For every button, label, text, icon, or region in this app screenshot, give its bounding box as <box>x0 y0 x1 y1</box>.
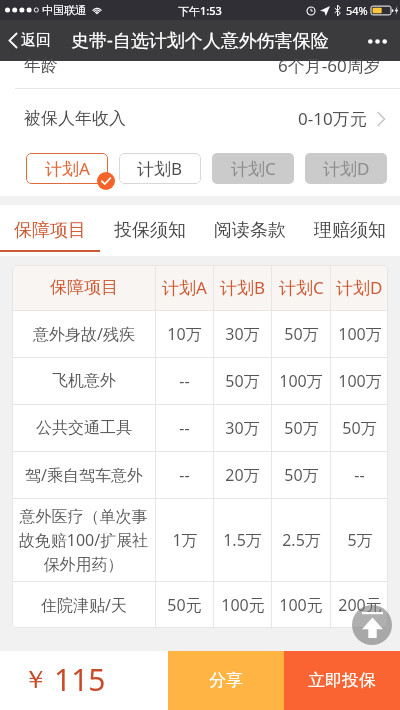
staticText: 50万 <box>284 323 319 345</box>
staticText: 54% <box>346 3 368 18</box>
staticText: 计划D <box>323 157 370 180</box>
button[interactable]: Back to top <box>352 605 392 645</box>
staticText: 投保须知 <box>114 219 186 242</box>
button[interactable]: 立即投保 <box>284 651 400 710</box>
staticText: 50元 <box>167 594 202 616</box>
staticText: 计划C <box>279 276 324 299</box>
staticText: 100元 <box>279 594 323 616</box>
staticText: 20万 <box>225 464 260 486</box>
staticText: 50万 <box>284 464 319 486</box>
staticText: ￥ <box>23 664 48 695</box>
staticText: 计划B <box>137 157 183 180</box>
staticText: 30万 <box>225 417 260 439</box>
staticText: 驾/乘自驾车意外 <box>25 464 143 486</box>
staticText: 100万 <box>279 370 323 392</box>
button[interactable]: 返回 <box>0 31 57 50</box>
staticText: 被保人年收入 <box>24 108 126 129</box>
staticText: 计划D <box>336 276 383 299</box>
staticText: 50万 <box>284 417 319 439</box>
staticText: 下午1:53 <box>178 3 222 18</box>
staticText: 返回 <box>21 31 51 50</box>
button[interactable]: 阅读条款 <box>200 205 300 256</box>
staticText: 保障项目 <box>50 277 118 298</box>
staticText: 5万 <box>347 529 373 551</box>
staticText: 理赔须知 <box>314 219 386 242</box>
staticText: 0-10万元 <box>298 107 367 130</box>
staticText: 阅读条款 <box>214 219 286 242</box>
button[interactable]: 计划D <box>305 153 387 184</box>
staticText: 飞机意外 <box>52 371 116 391</box>
staticText: 50万 <box>225 370 260 392</box>
staticText: 200元 <box>338 594 382 616</box>
button[interactable]: 计划B <box>119 153 201 184</box>
staticText: 史带-自选计划个人意外伤害保险 <box>71 28 329 53</box>
button[interactable]: 分享 <box>168 651 284 710</box>
staticText: 100万 <box>338 370 382 392</box>
staticText: 公共交通工具 <box>36 418 132 438</box>
staticText: 1万 <box>172 529 198 551</box>
staticText: -- <box>179 370 190 392</box>
button[interactable]: 理赔须知 <box>300 205 400 256</box>
button[interactable]: 计划A <box>26 153 108 184</box>
staticText: 年龄 <box>24 55 58 76</box>
button[interactable]: 计划C <box>212 153 294 184</box>
staticText: 计划A <box>162 276 207 299</box>
staticText: 2.5万 <box>282 529 321 551</box>
staticText: 115 <box>54 659 106 700</box>
staticText: 意外身故/残疾 <box>33 323 135 345</box>
staticText: -- <box>354 464 365 486</box>
staticText: 50万 <box>342 417 377 439</box>
staticText: 住院津贴/天 <box>41 594 127 616</box>
staticText: -- <box>179 464 190 486</box>
staticText: 计划B <box>220 276 266 299</box>
staticText: 意外医疗（单次事故免赔100/扩展社保外用药） <box>17 507 150 574</box>
staticText: 计划C <box>231 157 276 180</box>
button[interactable]: 被保人年收入 <box>0 89 400 148</box>
staticText: 6个月-60周岁 <box>278 54 381 77</box>
staticText: 分享 <box>209 670 243 691</box>
button[interactable]: More options <box>362 26 392 56</box>
staticText: 中国联通 <box>42 3 86 17</box>
staticText: 保障项目 <box>14 219 86 242</box>
button[interactable]: 保障项目 <box>0 205 100 256</box>
staticText: 30万 <box>225 323 260 345</box>
staticText: 10万 <box>167 323 202 345</box>
staticText: -- <box>179 417 190 439</box>
staticText: 计划A <box>45 157 90 180</box>
staticText: 立即投保 <box>308 670 376 691</box>
staticText: 1.5万 <box>223 529 262 551</box>
staticText: 100元 <box>221 594 265 616</box>
staticText: 100万 <box>338 323 382 345</box>
button[interactable]: 投保须知 <box>100 205 200 256</box>
